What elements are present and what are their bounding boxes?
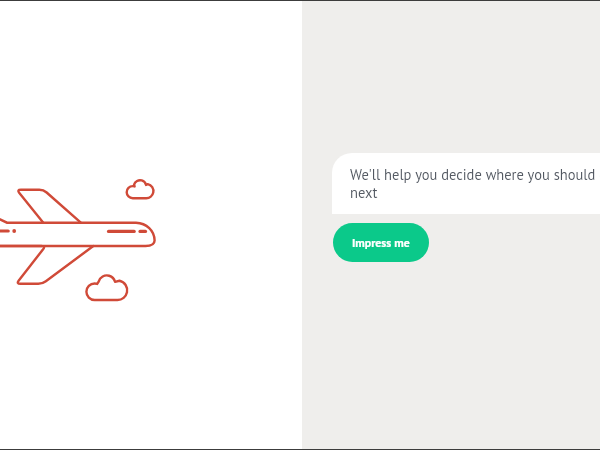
button[interactable]: Impress me [333,223,429,262]
staticText: We'll help you decide where you should g… [350,165,600,202]
button[interactable]: We'll help you decide where you should g… [332,153,600,214]
staticText: Impress me [352,235,410,250]
